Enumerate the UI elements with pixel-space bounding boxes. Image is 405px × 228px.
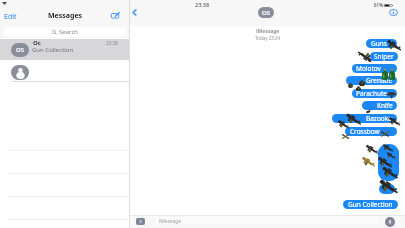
staticText: Messages: [48, 11, 83, 21]
button[interactable]: Molotov: [352, 64, 397, 73]
button[interactable]: Apps: [136, 218, 145, 225]
button[interactable]: Parachute: [352, 89, 397, 98]
button[interactable]: Bazooka: [332, 114, 397, 123]
button[interactable]: Back: [131, 8, 138, 17]
button[interactable]: New message: [109, 10, 122, 21]
staticText: Bazooka: [366, 114, 392, 123]
button[interactable]: OS: [258, 7, 274, 18]
button[interactable]: Guns: [366, 39, 397, 48]
button[interactable]: [378, 144, 399, 181]
button[interactable]: iMessage: [154, 217, 379, 225]
staticText: Gun Collection: [348, 200, 393, 209]
staticText: iMessage: [159, 218, 182, 225]
staticText: OS: [262, 9, 271, 17]
staticText: Knife: [377, 101, 393, 110]
button[interactable]: Details: [388, 8, 399, 17]
button[interactable]: OS: [0, 39, 130, 60]
staticText: Oc: [33, 39, 41, 47]
staticText: iMessage: [256, 28, 280, 35]
staticText: Sniper: [374, 52, 394, 61]
staticText: Today 23:24: [255, 35, 281, 41]
button[interactable]: [0, 60, 130, 82]
staticText: Guns: [371, 39, 387, 48]
button[interactable]: Record audio: [385, 217, 395, 227]
button[interactable]: Search: [4, 27, 126, 37]
staticText: 23:38: [106, 40, 118, 46]
button[interactable]: [379, 184, 395, 194]
staticText: Molotov: [356, 64, 381, 73]
staticText: Gun Collection: [32, 46, 74, 54]
staticText: Search: [59, 28, 78, 36]
button[interactable]: Grenade: [346, 76, 397, 85]
staticText: 23:38: [195, 1, 210, 8]
staticText: Parachute: [356, 89, 387, 98]
button[interactable]: Crossbow: [345, 127, 397, 136]
button[interactable]: Knife: [362, 101, 397, 110]
staticText: OS: [16, 46, 25, 54]
button[interactable]: Gun Collection: [343, 200, 398, 209]
staticText: Grenade: [366, 76, 393, 85]
button[interactable]: Edit: [2, 11, 19, 23]
staticText: 61%: [374, 2, 383, 8]
button[interactable]: Sniper: [370, 52, 398, 61]
staticText: Crossbow: [350, 127, 380, 136]
staticText: Edit: [4, 12, 17, 22]
